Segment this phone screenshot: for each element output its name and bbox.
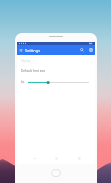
button[interactable]: Home button [51, 169, 61, 177]
staticText: Display [21, 59, 31, 63]
button[interactable]: Recent apps [73, 153, 85, 164]
button[interactable]: Account [86, 45, 95, 55]
button[interactable]: Open navigation menu [17, 45, 25, 55]
staticText: Default font size [21, 69, 46, 73]
staticText: Settings [25, 48, 41, 53]
button[interactable]: Search [78, 45, 86, 55]
staticText: Aa [21, 80, 25, 84]
